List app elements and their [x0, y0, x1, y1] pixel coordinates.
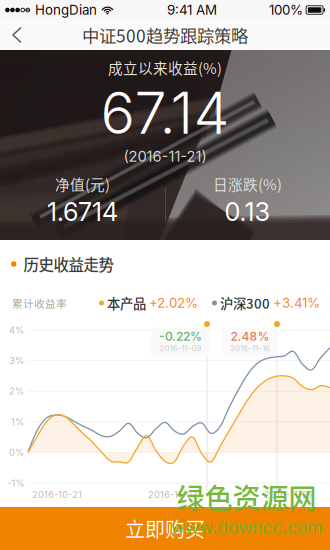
staticText: +3.41% — [273, 295, 320, 311]
staticText: 成立以来收益(%) — [108, 57, 222, 78]
staticText: 日涨跌(%) — [213, 173, 282, 194]
staticText: -0.22% — [159, 329, 202, 343]
staticText: -1% — [7, 477, 24, 489]
staticText: 历史收益走势 — [23, 253, 113, 275]
staticText: 本产品 — [104, 293, 149, 313]
staticText: 立即购买 — [125, 514, 205, 543]
staticText: 100% — [269, 2, 303, 18]
staticText: 2.48% — [230, 329, 269, 343]
staticText: 0.13 — [224, 196, 270, 227]
staticText: 1% — [11, 416, 24, 427]
staticText: 1.6714 — [47, 196, 118, 227]
staticText: 3% — [9, 355, 24, 366]
staticText: +2.02% — [149, 295, 198, 311]
staticText: 2016-10-21 — [32, 489, 82, 500]
staticText: 净值(元) — [55, 173, 110, 194]
button[interactable]: 返回 — [0, 19, 38, 50]
staticText: 67.14 — [100, 78, 229, 147]
staticText: 2% — [9, 386, 24, 397]
staticText: 绿色资源网 — [176, 476, 316, 517]
staticText: 累计收益率 — [12, 295, 67, 311]
staticText: www.downcc.com — [171, 517, 322, 538]
staticText: 0% — [9, 447, 24, 458]
staticText: 2016-11-21 — [264, 489, 312, 500]
staticText: HongDian — [31, 2, 97, 18]
staticText: 2016-11-16 — [230, 343, 270, 353]
staticText: 中证500趋势跟踪策略 — [82, 22, 248, 48]
button[interactable]: 立即购买 — [0, 507, 330, 550]
staticText: (2016-11-21) — [123, 147, 206, 165]
staticText: 2016-11-07 — [148, 489, 197, 500]
staticText: 9:41 AM — [167, 2, 217, 18]
staticText: 2016-11-09 — [159, 343, 201, 353]
staticText: 4% — [9, 324, 24, 336]
staticText: 沪深300 — [217, 293, 273, 313]
